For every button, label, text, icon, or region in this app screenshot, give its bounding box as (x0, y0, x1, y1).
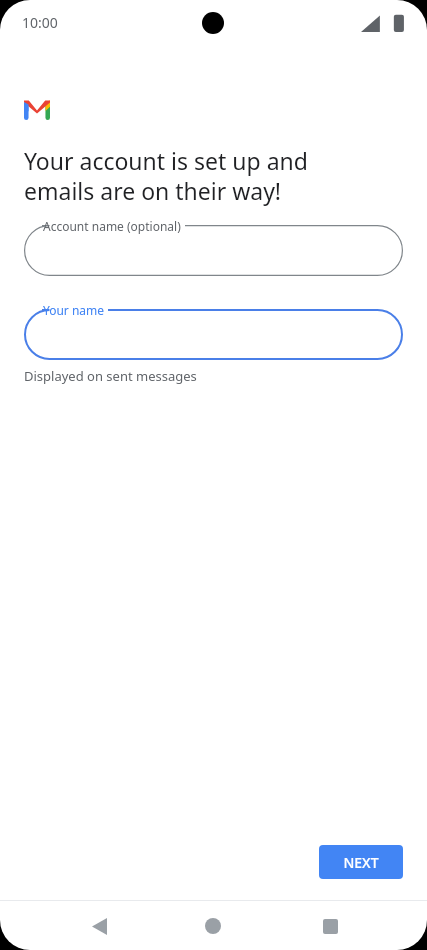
button[interactable]: NEXT (319, 845, 403, 879)
button[interactable]: Account name (optional) (24, 225, 403, 276)
staticText: NEXT (343, 853, 379, 872)
staticText: Account name (optional) (43, 218, 181, 234)
button[interactable]: Back (77, 904, 121, 948)
staticText: 10:00 (22, 13, 58, 32)
staticText: Your name (43, 302, 105, 318)
staticText: Displayed on sent messages (24, 367, 197, 385)
button[interactable]: Your name (24, 309, 403, 360)
button[interactable]: Recent apps (308, 904, 352, 948)
staticText: Your account is set up and emails are on… (24, 145, 308, 207)
button[interactable]: Home (191, 904, 235, 948)
